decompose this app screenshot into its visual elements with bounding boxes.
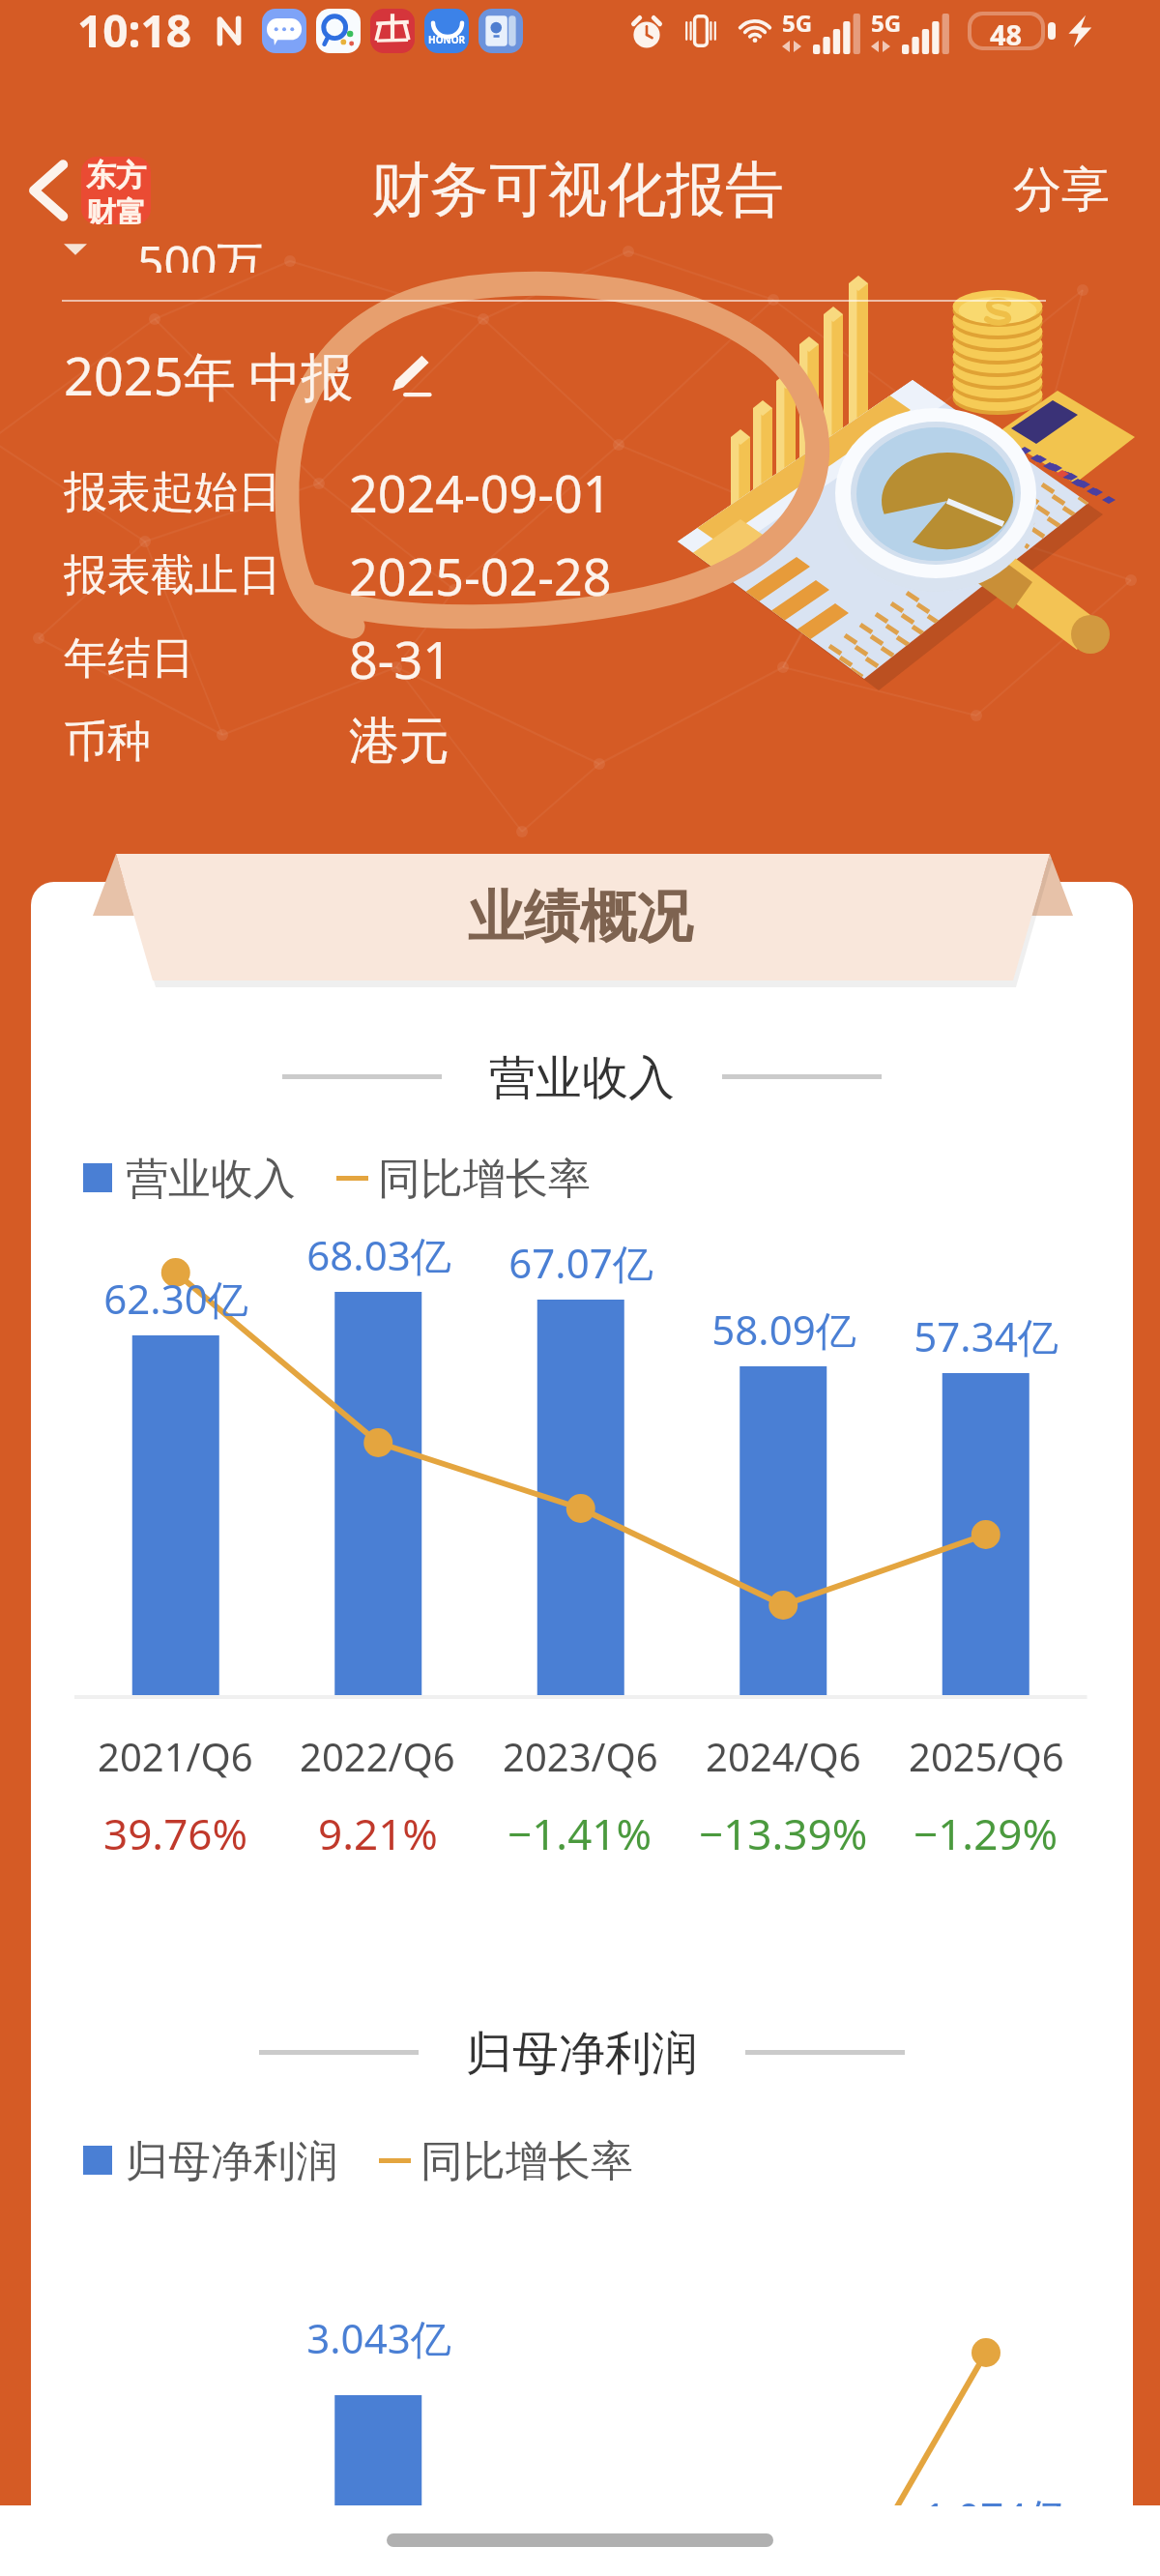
staticText: 报表起始日 — [64, 465, 281, 520]
staticText: 财务可视化报告 — [371, 153, 784, 227]
staticText: 报表截止日 — [64, 548, 281, 603]
button[interactable]: Back — [14, 157, 81, 224]
staticText: 5G — [782, 7, 813, 39]
staticText: −1.29% — [913, 1804, 1058, 1862]
staticText: 2024/Q6 — [706, 1730, 861, 1782]
staticText: 同比增长率 — [420, 2135, 633, 2185]
staticText: 48 — [990, 15, 1023, 46]
staticText: 币种 — [64, 715, 151, 770]
staticText: 东方 — [86, 157, 146, 194]
staticText: 2025/Q6 — [909, 1730, 1064, 1782]
staticText: 归母净利润 — [126, 2135, 338, 2185]
staticText: 3.043亿 — [306, 2310, 451, 2365]
staticText: 同比增长率 — [378, 1153, 591, 1203]
staticText: 财富 — [86, 194, 146, 224]
staticText: 分享 — [1013, 160, 1110, 220]
staticText: 营业收入 — [126, 1153, 296, 1203]
staticText: 67.07亿 — [508, 1235, 653, 1290]
staticText: 500万 — [137, 236, 264, 273]
staticText: 62.30亿 — [103, 1271, 248, 1326]
staticText: −13.39% — [699, 1804, 868, 1862]
staticText: 5G — [871, 7, 902, 39]
other: Edit report period — [385, 352, 431, 398]
staticText: 2025年 中报 — [64, 339, 354, 411]
staticText: 2023/Q6 — [503, 1730, 658, 1782]
button[interactable]: 分享 — [1001, 148, 1121, 232]
staticText: 8-31 — [349, 625, 451, 693]
staticText: 归母净利润 — [466, 2025, 698, 2079]
staticText: 业绩概况 — [468, 882, 692, 952]
staticText: 2021/Q6 — [98, 1730, 253, 1782]
staticText: 2024-09-01 — [349, 458, 612, 527]
staticText: 2025-02-28 — [349, 542, 612, 610]
staticText: 年结日 — [64, 631, 194, 687]
staticText: 1.074亿 — [923, 2489, 1068, 2544]
staticText: 68.03亿 — [306, 1227, 451, 1282]
staticText: 10:18 — [77, 0, 192, 61]
staticText: 39.76% — [103, 1804, 248, 1862]
staticText: −1.41% — [507, 1804, 652, 1862]
staticText: 57.34亿 — [913, 1308, 1058, 1363]
staticText: 9.21% — [318, 1804, 438, 1862]
staticText: 2022/Q6 — [300, 1730, 455, 1782]
staticText: 港元 — [349, 710, 449, 774]
staticText: 58.09亿 — [711, 1302, 856, 1357]
button[interactable]: East Money logo — [81, 157, 151, 224]
staticText: HONOR — [428, 33, 466, 46]
staticText: 营业收入 — [489, 1049, 675, 1103]
